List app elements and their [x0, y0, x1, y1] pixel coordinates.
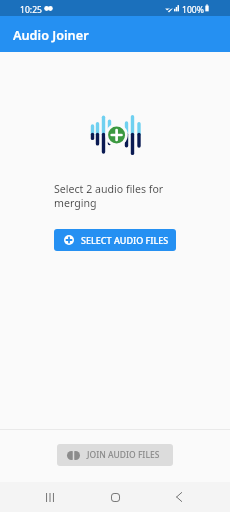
staticText: Select 2 audio files for merging	[54, 182, 176, 211]
staticText: JOIN AUDIO FILES	[87, 449, 160, 461]
button[interactable]: JOIN AUDIO FILES	[57, 444, 173, 466]
staticText: SELECT AUDIO FILES	[81, 234, 169, 246]
staticText: 100%	[182, 4, 204, 16]
button[interactable]: Home	[95, 482, 135, 512]
button[interactable]: SELECT AUDIO FILES	[54, 229, 176, 251]
staticText: 10:25	[20, 4, 42, 16]
button[interactable]: Recent apps	[30, 482, 70, 512]
staticText: Audio Joiner	[13, 26, 89, 43]
button[interactable]: Back	[159, 482, 199, 512]
